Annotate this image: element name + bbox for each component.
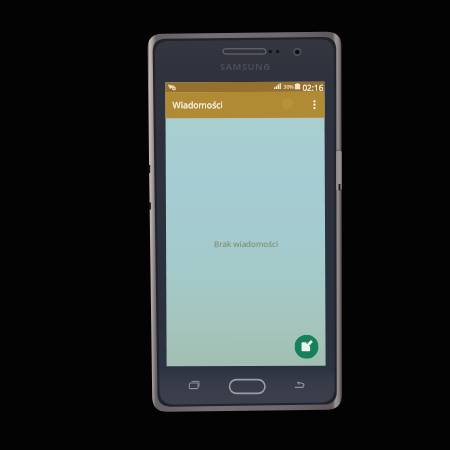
- button[interactable]: Compose new message: [294, 335, 319, 359]
- staticText: 30%: [283, 83, 294, 90]
- button[interactable]: Wiadomości: [165, 92, 324, 118]
- staticText: 02:16: [302, 82, 323, 92]
- button[interactable]: More options: [306, 97, 322, 113]
- staticText: SAMSUNG: [220, 60, 271, 73]
- staticText: Wiadomości: [172, 99, 224, 111]
- staticText: Brak wiadomości: [214, 238, 278, 249]
